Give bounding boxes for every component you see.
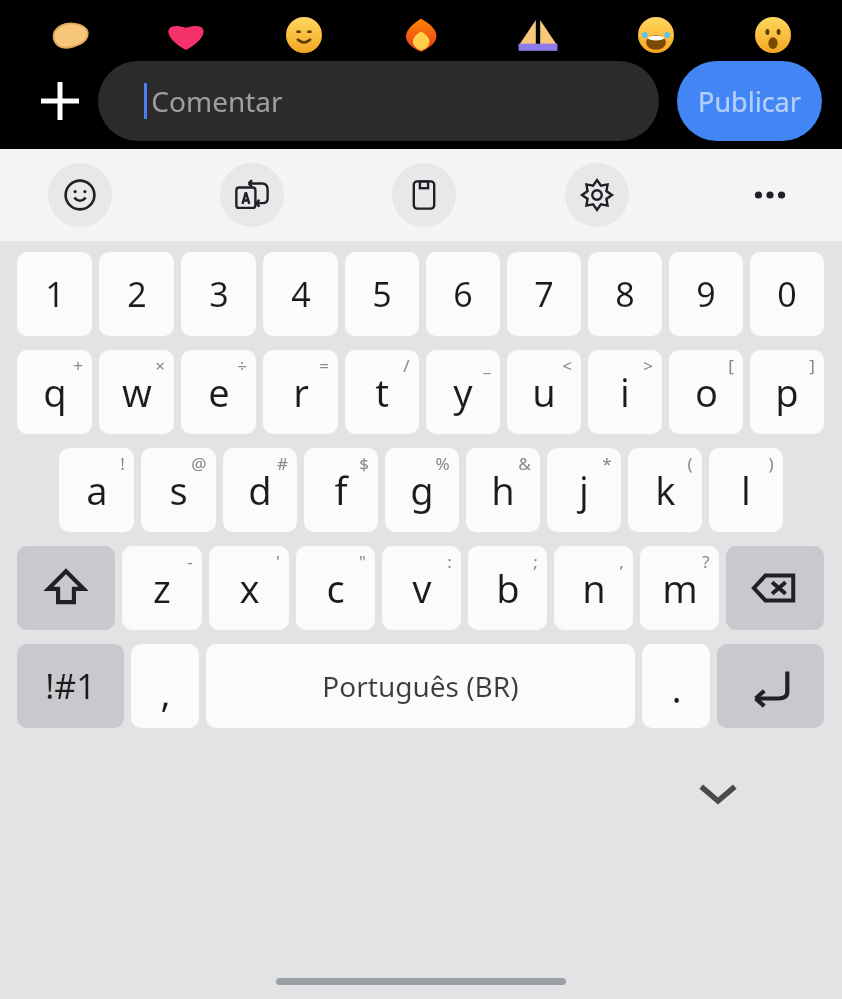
staticText: 8 bbox=[615, 271, 635, 317]
button[interactable]: Add media bbox=[22, 63, 98, 139]
staticText: g bbox=[410, 464, 434, 516]
button[interactable]: " bbox=[296, 546, 375, 630]
staticText: t bbox=[375, 366, 389, 418]
staticText: @ bbox=[191, 452, 207, 475]
staticText: ; bbox=[533, 550, 538, 573]
staticText: ! bbox=[120, 452, 125, 475]
button[interactable]: Português (BR) bbox=[206, 644, 635, 728]
staticText: f bbox=[334, 464, 348, 516]
staticText: % bbox=[435, 452, 450, 475]
staticText: 3 bbox=[209, 271, 229, 317]
button[interactable]: Publicar bbox=[677, 61, 822, 141]
button[interactable]: × bbox=[99, 350, 174, 434]
button[interactable]: ' bbox=[209, 546, 289, 630]
button[interactable]: ÷ bbox=[181, 350, 256, 434]
button[interactable]: Translate bbox=[220, 163, 284, 227]
staticText: c bbox=[326, 562, 345, 614]
staticText: d bbox=[248, 464, 272, 516]
staticText: * bbox=[602, 452, 612, 475]
staticText: l bbox=[741, 464, 751, 516]
button[interactable]: 1 bbox=[17, 252, 92, 336]
button[interactable]: 0 bbox=[750, 252, 824, 336]
button[interactable]: ? bbox=[640, 546, 719, 630]
button[interactable]: & bbox=[466, 448, 540, 532]
staticText: 1 bbox=[45, 271, 65, 317]
button[interactable]: - bbox=[122, 546, 202, 630]
button[interactable]: More options bbox=[738, 163, 802, 227]
button[interactable]: 7 bbox=[507, 252, 581, 336]
staticText: $ bbox=[359, 452, 369, 475]
button[interactable]: Emoji bbox=[48, 163, 112, 227]
staticText: a bbox=[86, 464, 108, 516]
staticText: _ bbox=[483, 354, 491, 377]
button[interactable]: 3 bbox=[181, 252, 256, 336]
staticText: ) bbox=[768, 452, 774, 475]
staticText: b bbox=[496, 562, 520, 614]
button[interactable]: 4 bbox=[263, 252, 338, 336]
staticText: ? bbox=[702, 550, 710, 573]
button[interactable]: / bbox=[345, 350, 419, 434]
staticText: & bbox=[518, 452, 531, 475]
staticText: ÷ bbox=[237, 354, 247, 377]
button[interactable]: ] bbox=[750, 350, 824, 434]
staticText: - bbox=[187, 550, 193, 573]
button[interactable]: ! bbox=[59, 448, 134, 532]
staticText: r bbox=[293, 366, 309, 418]
staticText: < bbox=[562, 354, 572, 377]
staticText: ' bbox=[276, 550, 280, 573]
staticText: 9 bbox=[696, 271, 716, 317]
button[interactable]: > bbox=[588, 350, 662, 434]
button[interactable]: = bbox=[263, 350, 338, 434]
button[interactable]: 8 bbox=[588, 252, 662, 336]
button[interactable]: ) bbox=[709, 448, 783, 532]
button[interactable]: 6 bbox=[426, 252, 500, 336]
button[interactable]: Settings bbox=[565, 163, 629, 227]
button[interactable]: 2 bbox=[99, 252, 174, 336]
staticText: , bbox=[619, 550, 624, 573]
staticText: / bbox=[403, 354, 410, 377]
button[interactable]: Clipboard bbox=[392, 163, 456, 227]
button[interactable]: % bbox=[385, 448, 459, 532]
button[interactable]: . bbox=[642, 644, 710, 728]
button[interactable]: , bbox=[131, 644, 199, 728]
button[interactable]: < bbox=[507, 350, 581, 434]
staticText: . bbox=[671, 662, 682, 714]
button[interactable]: [ bbox=[669, 350, 743, 434]
staticText: y bbox=[453, 366, 473, 418]
button[interactable]: : bbox=[382, 546, 461, 630]
button[interactable]: Hide keyboard bbox=[683, 758, 753, 828]
staticText: e bbox=[208, 366, 230, 418]
staticText: i bbox=[620, 366, 630, 418]
button[interactable]: + bbox=[17, 350, 92, 434]
button[interactable]: 9 bbox=[669, 252, 743, 336]
staticText: k bbox=[655, 464, 676, 516]
staticText: s bbox=[169, 464, 188, 516]
button[interactable]: ( bbox=[628, 448, 702, 532]
button[interactable]: # bbox=[223, 448, 297, 532]
button[interactable]: @ bbox=[141, 448, 216, 532]
button[interactable]: * bbox=[547, 448, 621, 532]
staticText: : bbox=[447, 550, 452, 573]
button[interactable]: !#1 bbox=[17, 644, 124, 728]
staticText: ( bbox=[687, 452, 693, 475]
staticText: " bbox=[359, 550, 366, 573]
button[interactable]: _ bbox=[426, 350, 500, 434]
button[interactable]: Shift bbox=[17, 546, 115, 630]
staticText: p bbox=[775, 366, 799, 418]
button[interactable]: $ bbox=[304, 448, 378, 532]
button[interactable]: , bbox=[554, 546, 633, 630]
staticText: j bbox=[579, 464, 589, 516]
staticText: 6 bbox=[453, 271, 473, 317]
staticText: # bbox=[277, 452, 288, 475]
button[interactable]: Enter bbox=[717, 644, 824, 728]
staticText: 5 bbox=[372, 271, 392, 317]
staticText: Português (BR) bbox=[322, 667, 519, 705]
staticText: Comentar bbox=[151, 82, 283, 120]
button[interactable]: Backspace bbox=[726, 546, 824, 630]
button[interactable]: ; bbox=[468, 546, 547, 630]
button[interactable]: 5 bbox=[345, 252, 419, 336]
staticText: Publicar bbox=[698, 83, 801, 120]
button[interactable]: Comentar bbox=[98, 61, 659, 141]
staticText: [ bbox=[728, 354, 734, 377]
staticText: w bbox=[122, 366, 152, 418]
